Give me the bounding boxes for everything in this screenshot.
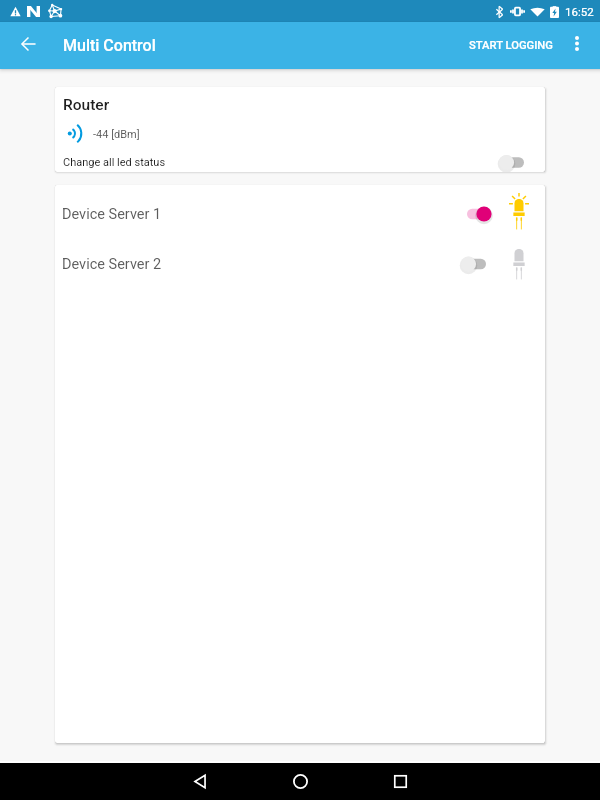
staticText: START LOGGING <box>469 39 553 52</box>
button[interactable]: Device Server 2 <box>55 239 545 289</box>
staticText: -44 [dBm] <box>93 128 140 141</box>
button[interactable]: More options <box>553 22 600 69</box>
staticText: Router <box>63 96 110 114</box>
button[interactable]: Home <box>250 763 350 800</box>
staticText: Change all led status <box>63 156 166 169</box>
button[interactable] <box>463 252 491 276</box>
button[interactable]: Recent apps <box>350 763 450 800</box>
staticText: Device Server 2 <box>62 256 162 273</box>
button[interactable]: Change all led status <box>55 153 545 172</box>
button[interactable] <box>501 153 529 172</box>
button[interactable]: Device Server 1 <box>55 189 545 239</box>
button[interactable]: Back <box>0 22 56 69</box>
button[interactable]: START LOGGING <box>455 22 553 69</box>
button[interactable] <box>463 202 491 226</box>
staticText: Multi Control <box>63 36 156 55</box>
staticText: Device Server 1 <box>62 206 162 223</box>
button[interactable]: Back <box>150 763 250 800</box>
staticText: 16:52 <box>565 5 594 18</box>
